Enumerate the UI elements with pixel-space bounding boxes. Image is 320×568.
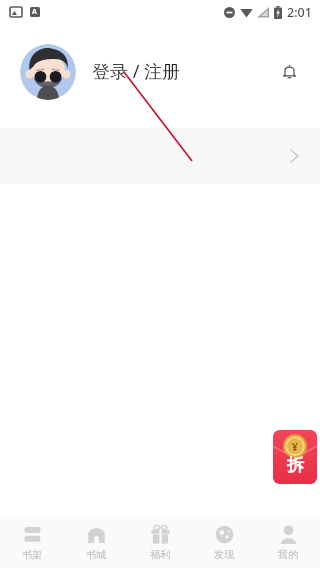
button[interactable]: 登录 / 注册	[90, 53, 183, 90]
staticText: 登录 / 注册	[92, 59, 181, 84]
button[interactable]: 福利	[128, 519, 192, 566]
button[interactable]: Notifications	[272, 55, 306, 89]
staticText: 书城	[86, 548, 106, 561]
staticText: 福利	[150, 548, 170, 561]
button[interactable]: 发现	[192, 519, 256, 566]
staticText: 书架	[22, 548, 42, 561]
staticText: A	[32, 7, 37, 17]
button[interactable]: 书城	[64, 519, 128, 566]
button[interactable]: Details	[0, 128, 320, 184]
button[interactable]: Avatar	[20, 44, 76, 100]
staticText: 发现	[214, 548, 234, 561]
staticText: 拆	[287, 455, 304, 476]
button[interactable]: 书架	[0, 519, 64, 566]
button[interactable]: Open red packet	[273, 430, 317, 484]
staticText: 我的	[278, 548, 298, 561]
staticText: ¥	[292, 440, 298, 454]
button[interactable]: 我的	[256, 519, 320, 566]
staticText: 2:01	[287, 4, 312, 21]
